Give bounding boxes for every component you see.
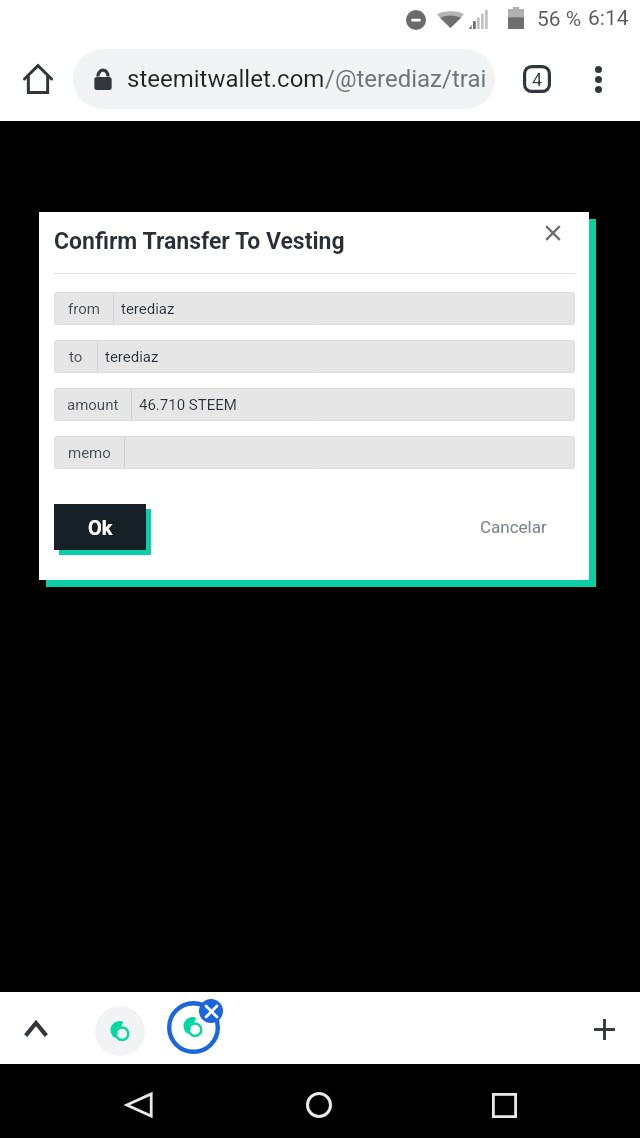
button[interactable]: More options — [575, 56, 621, 102]
button[interactable]: Back — [114, 1080, 164, 1130]
button[interactable]: Home — [294, 1080, 344, 1130]
staticText: Ok — [88, 516, 113, 539]
button[interactable]: Ok — [54, 504, 146, 550]
staticText: memo — [68, 444, 111, 462]
button[interactable]: Close — [535, 215, 571, 251]
staticText: steemitwallet.com — [127, 65, 325, 93]
button[interactable]: Recent apps — [479, 1080, 529, 1130]
button[interactable]: Close tab — [199, 999, 223, 1023]
button[interactable]: Cancelar — [480, 517, 547, 537]
staticText: terediaz — [105, 348, 159, 366]
staticText: 46.710 STEEM — [139, 396, 237, 414]
staticText: 56 % — [537, 7, 582, 32]
button[interactable]: New tab — [580, 1005, 628, 1053]
button[interactable]: Expand tab switcher — [12, 1004, 60, 1052]
staticText: Cancelar — [480, 517, 547, 537]
staticText: to — [69, 348, 83, 366]
button[interactable]: steemitwallet.com — [73, 49, 495, 109]
staticText: amount — [67, 396, 119, 414]
button[interactable]: Tab 2 — [167, 1001, 220, 1054]
staticText: from — [68, 300, 100, 318]
staticText: /@terediaz/trai — [325, 65, 487, 93]
staticText: 4 — [532, 69, 543, 90]
staticText: 6:14 — [588, 6, 629, 31]
staticText: terediaz — [121, 300, 175, 318]
button[interactable]: Home — [14, 55, 62, 103]
button[interactable]: Tab 1 — [95, 1006, 145, 1056]
button[interactable]: Tabs — [514, 56, 560, 102]
staticText: Confirm Transfer To Vesting — [54, 228, 345, 255]
